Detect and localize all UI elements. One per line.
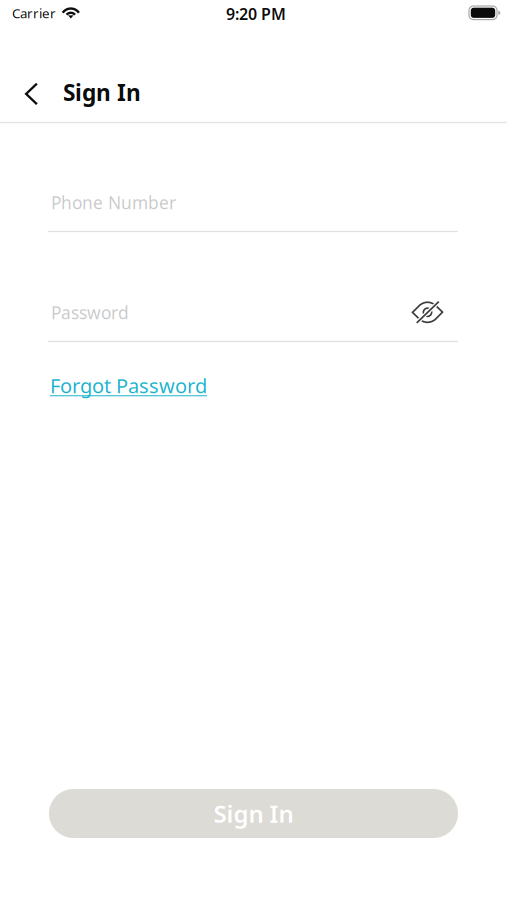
button[interactable]: Sign In [49, 789, 458, 838]
staticText: Phone Number [51, 191, 176, 214]
staticText: Carrier [12, 4, 56, 22]
staticText: Password [51, 301, 129, 324]
staticText: 9:20 PM [226, 3, 286, 24]
button[interactable]: Forgot Password [50, 372, 207, 399]
staticText: Forgot Password [50, 372, 207, 399]
button[interactable]: Back [9, 72, 53, 116]
button[interactable]: Password [48, 298, 412, 342]
button[interactable]: Show password [406, 290, 450, 334]
button[interactable]: Phone Number [48, 188, 458, 232]
staticText: Sign In [63, 77, 141, 107]
staticText: Sign In [213, 798, 293, 829]
